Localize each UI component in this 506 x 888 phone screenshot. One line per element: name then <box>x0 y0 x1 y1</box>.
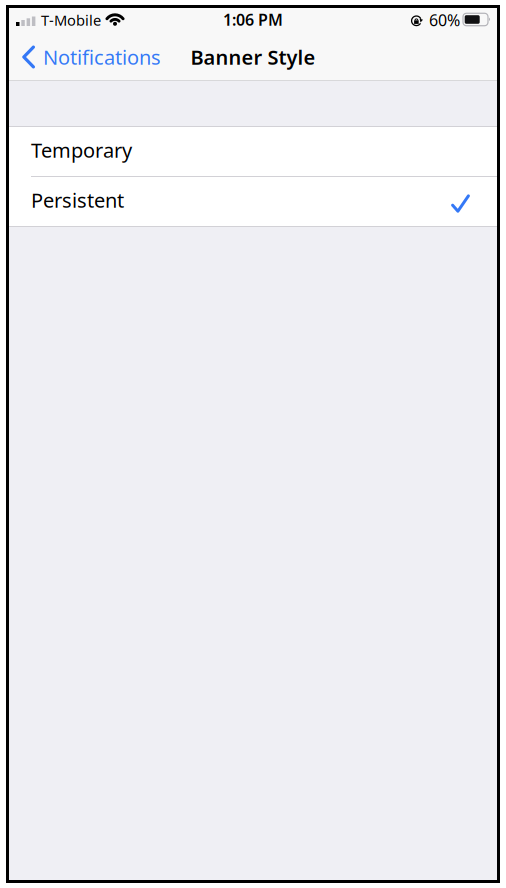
staticText: Temporary <box>31 137 132 163</box>
staticText: T-Mobile <box>41 10 101 30</box>
staticText: Persistent <box>31 187 124 213</box>
button[interactable]: Notifications <box>22 44 161 70</box>
staticText: 1:06 PM <box>223 9 283 30</box>
button[interactable]: Temporary <box>9 127 497 176</box>
staticText: 60% <box>429 9 460 31</box>
staticText: Notifications <box>43 44 161 70</box>
staticText: Banner Style <box>190 44 315 70</box>
button[interactable]: Persistent <box>9 177 497 226</box>
